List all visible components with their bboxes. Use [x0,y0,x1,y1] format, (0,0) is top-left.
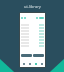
staticText: ui-library [24,4,41,9]
button[interactable] [33,54,44,57]
button[interactable] [21,54,32,57]
